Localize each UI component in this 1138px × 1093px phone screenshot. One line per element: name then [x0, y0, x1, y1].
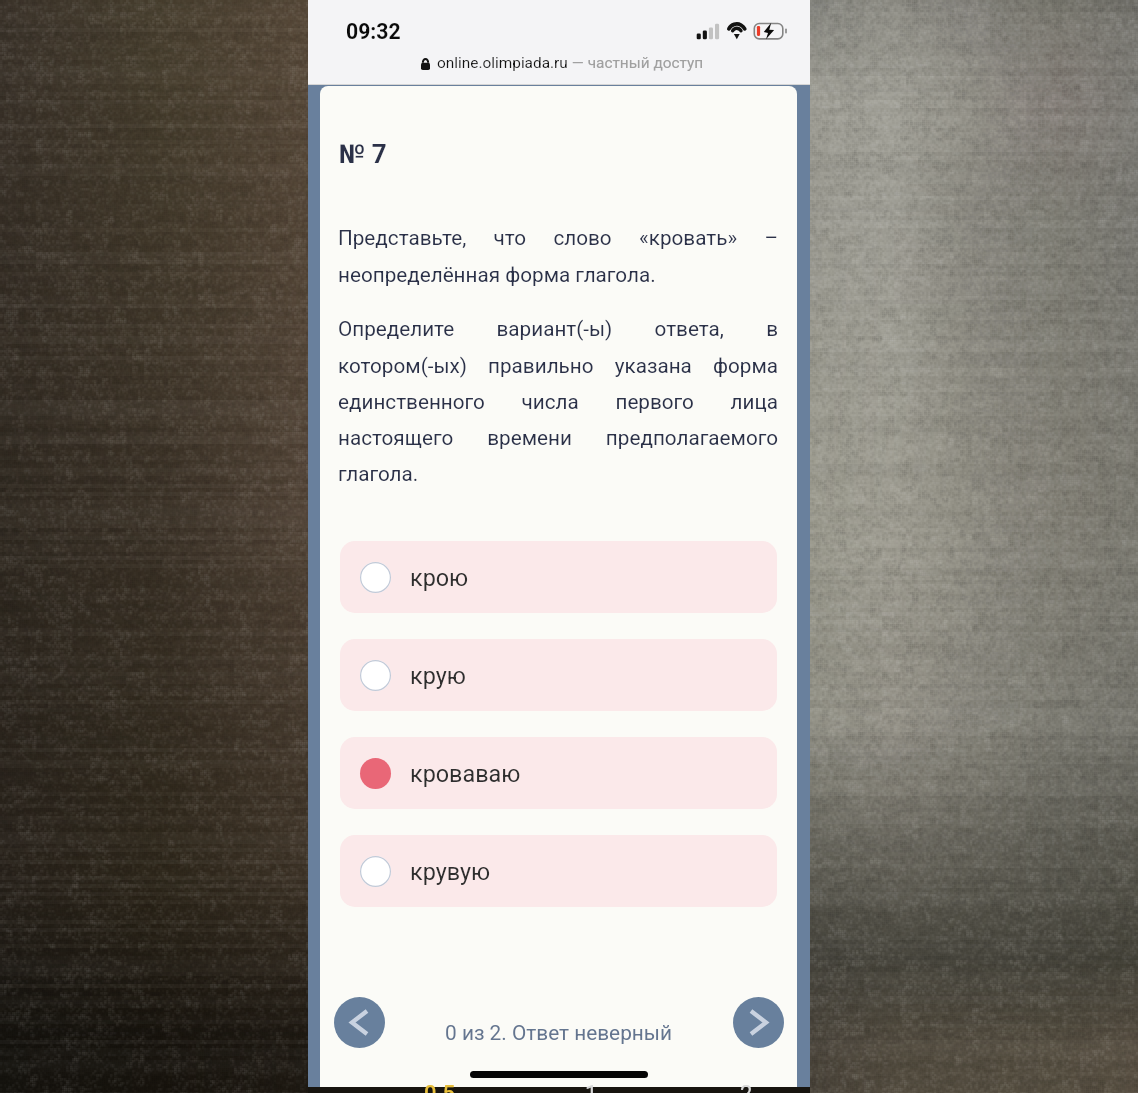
staticText: 1: [585, 1081, 598, 1093]
staticText: 0 из 2. Ответ неверный: [320, 1021, 797, 1045]
button[interactable]: кроваваю: [340, 737, 777, 809]
button[interactable]: крую: [340, 639, 777, 711]
staticText: Представьте, что слово «кровать» – неопр…: [338, 226, 778, 287]
staticText: Определите вариант(‑ы) ответа, в котором…: [338, 317, 778, 486]
staticText: крувую: [410, 858, 491, 885]
button[interactable]: крувую: [340, 835, 777, 907]
staticText: 09:32: [346, 19, 401, 44]
button[interactable]: Next question: [733, 997, 784, 1048]
staticText: крую: [410, 662, 466, 689]
button[interactable]: крою: [340, 541, 777, 613]
button[interactable]: online.olimpiada.ru: [421, 54, 704, 72]
staticText: 2: [740, 1081, 753, 1093]
staticText: кроваваю: [410, 760, 521, 787]
staticText: 0.5: [424, 1081, 456, 1093]
staticText: крою: [410, 564, 469, 591]
staticText: — частный доступ: [568, 54, 704, 72]
button[interactable]: Previous question: [334, 997, 385, 1048]
staticText: online.olimpiada.ru: [437, 54, 568, 72]
staticText: № 7: [339, 139, 387, 169]
